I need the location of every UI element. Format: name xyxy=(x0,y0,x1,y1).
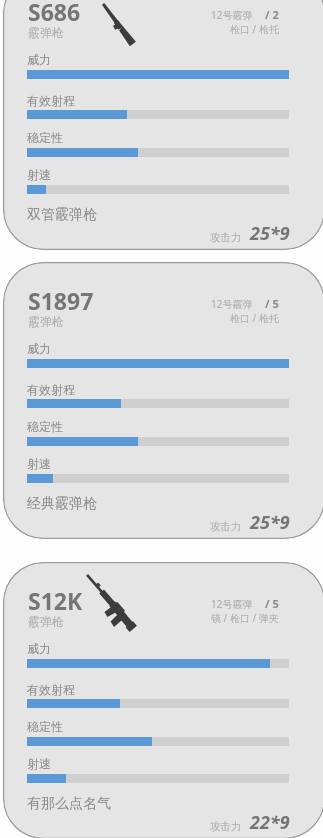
staticText: 攻击力 xyxy=(210,520,242,533)
staticText: 有效射程 xyxy=(27,93,75,108)
button[interactable]: S1897 xyxy=(3,262,323,539)
staticText: 射速 xyxy=(27,756,51,771)
staticText: / 2 xyxy=(265,7,279,22)
staticText: S12K xyxy=(28,585,83,616)
staticText: 稳定性 xyxy=(27,419,63,434)
staticText: 25*9 xyxy=(250,510,290,535)
staticText: 镜 / 枪口 / 弹夹 xyxy=(211,611,279,625)
staticText: 威力 xyxy=(27,641,51,656)
staticText: 25*9 xyxy=(250,221,290,246)
staticText: 威力 xyxy=(27,341,51,356)
staticText: 有效射程 xyxy=(27,682,75,697)
staticText: 有效射程 xyxy=(27,382,75,397)
staticText: 有那么点名气 xyxy=(27,795,111,813)
staticText: 12号霰弹 xyxy=(211,8,253,22)
staticText: / 5 xyxy=(265,296,279,311)
staticText: 射速 xyxy=(27,456,51,471)
staticText: S686 xyxy=(28,0,81,27)
staticText: 射速 xyxy=(27,167,51,182)
button[interactable]: S12K weapon image xyxy=(3,562,323,838)
staticText: 攻击力 xyxy=(210,231,242,244)
staticText: 12号霰弹 xyxy=(211,597,253,611)
staticText: 枪口 / 枪托 xyxy=(230,22,279,36)
staticText: 稳定性 xyxy=(27,719,63,734)
staticText: 双管霰弹枪 xyxy=(27,206,97,224)
staticText: 霰弹枪 xyxy=(28,314,64,329)
other: S12K weapon image xyxy=(87,575,147,637)
other: S686 weapon image xyxy=(103,4,147,54)
staticText: 威力 xyxy=(27,52,51,67)
staticText: 稳定性 xyxy=(27,130,63,145)
staticText: / 5 xyxy=(265,596,279,611)
staticText: 经典霰弹枪 xyxy=(27,495,97,513)
staticText: S1897 xyxy=(28,285,94,316)
button[interactable]: S686 weapon image xyxy=(3,0,323,250)
staticText: 霰弹枪 xyxy=(28,25,64,40)
staticText: 22*9 xyxy=(250,810,290,835)
staticText: 枪口 / 枪托 xyxy=(230,311,279,325)
staticText: 12号霰弹 xyxy=(211,297,253,311)
staticText: 霰弹枪 xyxy=(28,614,64,629)
staticText: 攻击力 xyxy=(210,820,242,833)
